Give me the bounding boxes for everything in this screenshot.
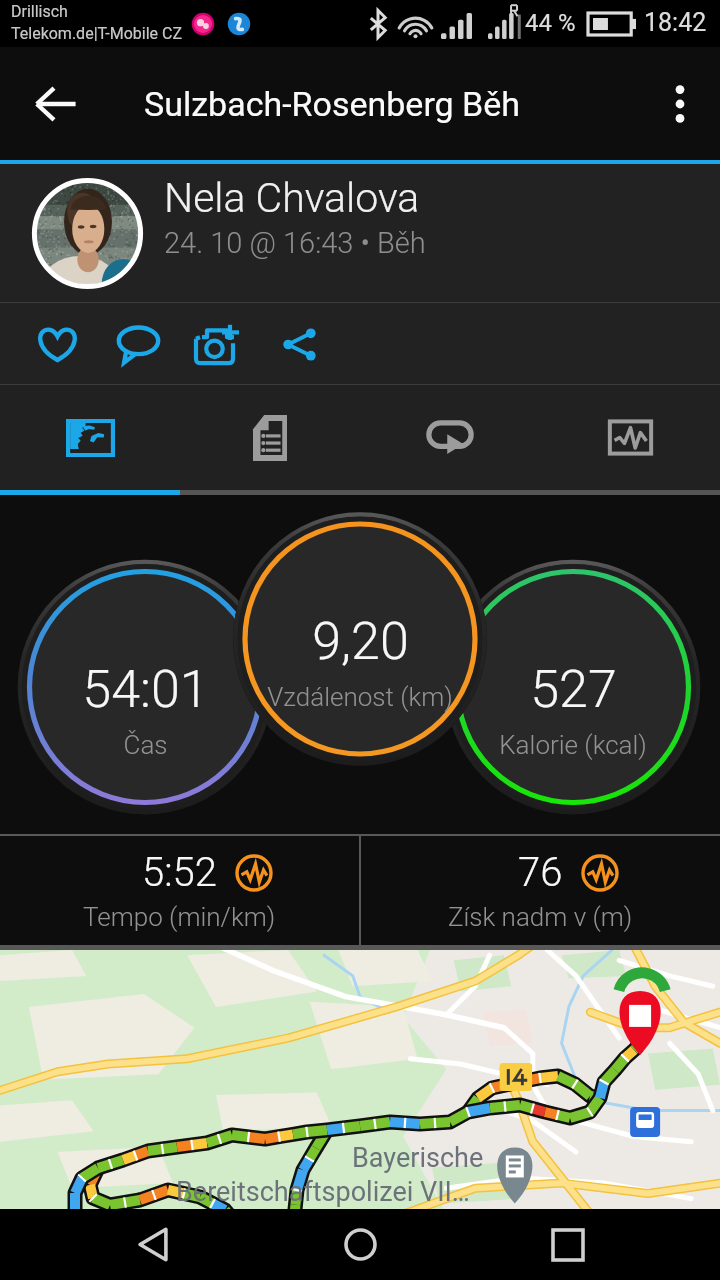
staticText: 44 % <box>525 9 576 37</box>
staticText: Sulzbach-Rosenberg Běh <box>144 84 521 124</box>
staticText: Bayerische <box>352 1142 484 1174</box>
button[interactable]: Back <box>22 70 90 138</box>
staticText: Drillisch <box>11 2 68 21</box>
staticText: Bereitschaftspolizei VII… <box>176 1176 470 1208</box>
staticText: 9,20 <box>312 611 409 672</box>
staticText: 18:42 <box>644 8 707 37</box>
staticText: 24. 10 @ 16:43 • Běh <box>164 226 426 260</box>
button[interactable]: More options <box>648 72 712 136</box>
button[interactable]: Comment <box>104 310 172 378</box>
staticText: Získ nadm v (m) <box>448 902 633 932</box>
button[interactable]: Map tab <box>0 385 180 490</box>
staticText: Vzdálenost (km) <box>267 682 453 712</box>
staticText: Tempo (min/km) <box>83 902 276 932</box>
button[interactable]: Add photo <box>185 310 253 378</box>
button[interactable]: Laps tab <box>360 385 540 490</box>
button[interactable]: Recents <box>513 1209 623 1280</box>
staticText: Nela Chvalova <box>164 174 420 222</box>
staticText: 54:01 <box>82 659 209 720</box>
staticText: Telekom.de|T-Mobile CZ <box>11 24 182 43</box>
button[interactable]: 76 <box>361 836 720 945</box>
button[interactable]: Like <box>23 310 91 378</box>
staticText: Kalorie (kcal) <box>499 730 647 760</box>
staticText: 76 <box>518 849 563 896</box>
button[interactable]: Bayerische <box>0 950 720 1209</box>
button[interactable]: Share <box>266 310 334 378</box>
button[interactable]: Nela Chvalova <box>0 164 720 302</box>
staticText: Čas <box>123 730 168 760</box>
staticText: 527 <box>530 659 617 720</box>
button[interactable]: Back <box>98 1209 208 1280</box>
button[interactable]: Details tab <box>180 385 360 490</box>
button[interactable]: Graph tab <box>540 385 720 490</box>
staticText: 5:52 <box>142 849 217 896</box>
button[interactable]: Home <box>305 1209 415 1280</box>
button[interactable]: 5:52 <box>0 836 359 945</box>
